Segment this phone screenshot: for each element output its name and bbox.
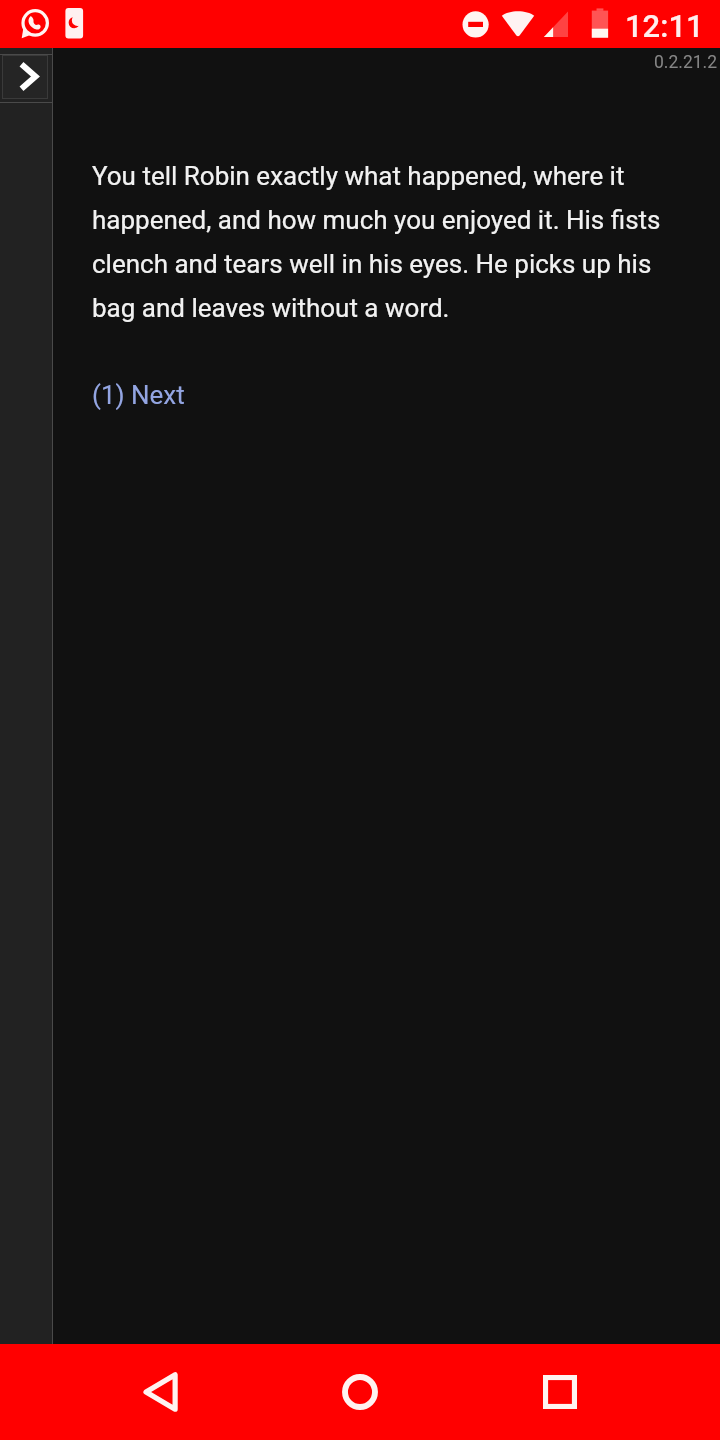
staticText: You tell Robin exactly what happened, wh… xyxy=(92,161,662,323)
staticText: 12:11 xyxy=(625,8,704,44)
button[interactable]: (1) Next xyxy=(92,367,185,410)
button[interactable]: Recent apps xyxy=(516,1348,604,1436)
button[interactable]: Next page xyxy=(0,54,53,103)
button[interactable]: Home xyxy=(316,1348,404,1436)
staticText: (1) Next xyxy=(92,380,185,410)
button[interactable]: Back xyxy=(116,1348,204,1436)
staticText: 0.2.21.2 xyxy=(654,52,718,73)
